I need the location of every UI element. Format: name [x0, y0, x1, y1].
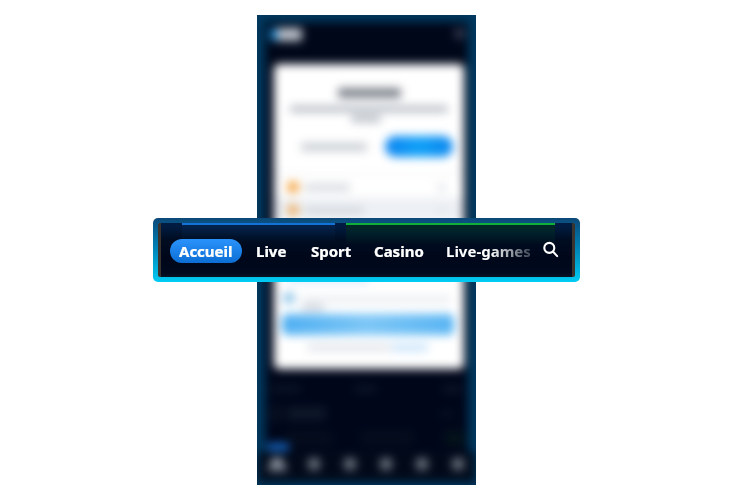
- button[interactable]: Casino: [374, 234, 424, 268]
- staticText: Accueil: [179, 241, 233, 261]
- button[interactable]: Accueil: [170, 239, 242, 263]
- button[interactable]: Sport: [311, 234, 352, 268]
- button[interactable]: Live-games: [446, 234, 531, 268]
- staticText: Casino: [374, 241, 424, 261]
- button[interactable]: Live: [256, 234, 287, 268]
- staticText: Live-games: [446, 241, 531, 261]
- button[interactable]: Search: [539, 238, 563, 262]
- staticText: Sport: [311, 241, 352, 261]
- staticText: Live: [256, 241, 287, 261]
